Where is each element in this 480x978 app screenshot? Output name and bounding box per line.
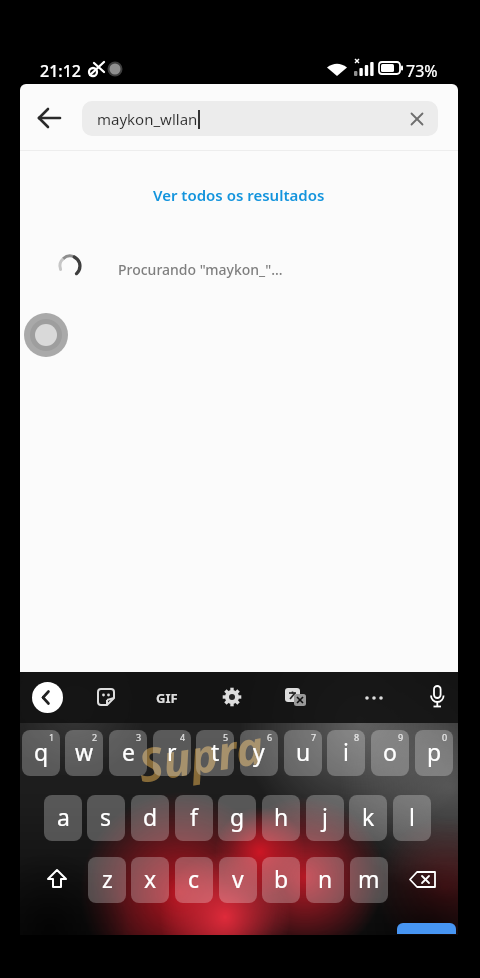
button[interactable]: n (306, 857, 344, 903)
button[interactable]: Ver todos os resultados (153, 185, 325, 205)
staticText: Ver todos os resultados (153, 185, 325, 205)
staticText: r (167, 736, 177, 767)
button[interactable]: maykon_wllan (82, 101, 438, 136)
staticText: g (230, 801, 245, 832)
button[interactable]: s (87, 795, 125, 841)
staticText: f (190, 801, 198, 832)
button[interactable]: l (393, 795, 431, 841)
button[interactable]: z (88, 857, 126, 903)
staticText: 5 (223, 731, 229, 743)
staticText: k (362, 801, 375, 832)
button[interactable] (38, 857, 76, 903)
staticText: y (253, 736, 265, 767)
staticText: o (383, 736, 397, 767)
staticText: d (143, 801, 158, 832)
button[interactable] (406, 108, 428, 130)
staticText: a (57, 801, 70, 832)
button[interactable]: k (349, 795, 387, 841)
button[interactable]: p (415, 730, 453, 776)
button[interactable]: GIF (156, 689, 178, 707)
staticText: 6 (267, 731, 273, 743)
staticText: z (102, 863, 113, 894)
staticText: b (274, 863, 289, 894)
staticText: q (34, 736, 49, 767)
staticText: 9 (398, 731, 404, 743)
button[interactable]: g (218, 795, 256, 841)
staticText: 4 (180, 731, 186, 743)
staticText: u (296, 736, 311, 767)
button[interactable]: i (327, 730, 365, 776)
button[interactable]: q (22, 730, 60, 776)
staticText: 0 (442, 731, 448, 743)
button[interactable]: o (371, 730, 409, 776)
button[interactable]: y (240, 730, 278, 776)
button[interactable]: t (196, 730, 234, 776)
button[interactable]: w (65, 730, 103, 776)
button[interactable] (36, 104, 64, 132)
button[interactable] (404, 857, 444, 903)
staticText: t (211, 736, 220, 767)
button[interactable]: j (306, 795, 344, 841)
button[interactable]: b (262, 857, 300, 903)
staticText: i (343, 736, 349, 767)
staticText: 21:12 (40, 60, 81, 82)
staticText: m (358, 863, 380, 894)
button[interactable]: m (350, 857, 388, 903)
button[interactable]: u (284, 730, 322, 776)
staticText: l (409, 801, 415, 832)
button[interactable]: x (131, 857, 169, 903)
staticText: j (322, 801, 328, 832)
staticText: maykon_wllan (97, 109, 198, 129)
button[interactable] (362, 686, 386, 710)
staticText: x (144, 863, 157, 894)
staticText: s (100, 801, 112, 832)
staticText: Supra (134, 714, 268, 796)
button[interactable]: f (175, 795, 213, 841)
staticText: 1 (49, 731, 55, 743)
button[interactable]: a (44, 795, 82, 841)
staticText: n (318, 863, 333, 894)
button[interactable]: d (131, 795, 169, 841)
button[interactable]: v (219, 857, 257, 903)
staticText: w (75, 736, 94, 767)
staticText: p (427, 736, 442, 767)
staticText: 3 (136, 731, 142, 743)
staticText: v (232, 863, 244, 894)
staticText: c (188, 863, 200, 894)
button[interactable]: r (153, 730, 191, 776)
button[interactable] (94, 685, 118, 709)
button[interactable] (220, 685, 244, 709)
staticText: 7 (311, 731, 317, 743)
button[interactable] (32, 682, 63, 713)
button[interactable]: e (109, 730, 147, 776)
button[interactable]: c (175, 857, 213, 903)
staticText: 2 (92, 731, 98, 743)
staticText: e (122, 736, 135, 767)
staticText: 73% (406, 60, 438, 82)
button[interactable] (283, 685, 308, 709)
staticText: 8 (354, 731, 360, 743)
button[interactable]: h (262, 795, 300, 841)
staticText: Procurando "maykon_"... (118, 260, 283, 279)
staticText: h (274, 801, 289, 832)
button[interactable] (425, 683, 449, 711)
